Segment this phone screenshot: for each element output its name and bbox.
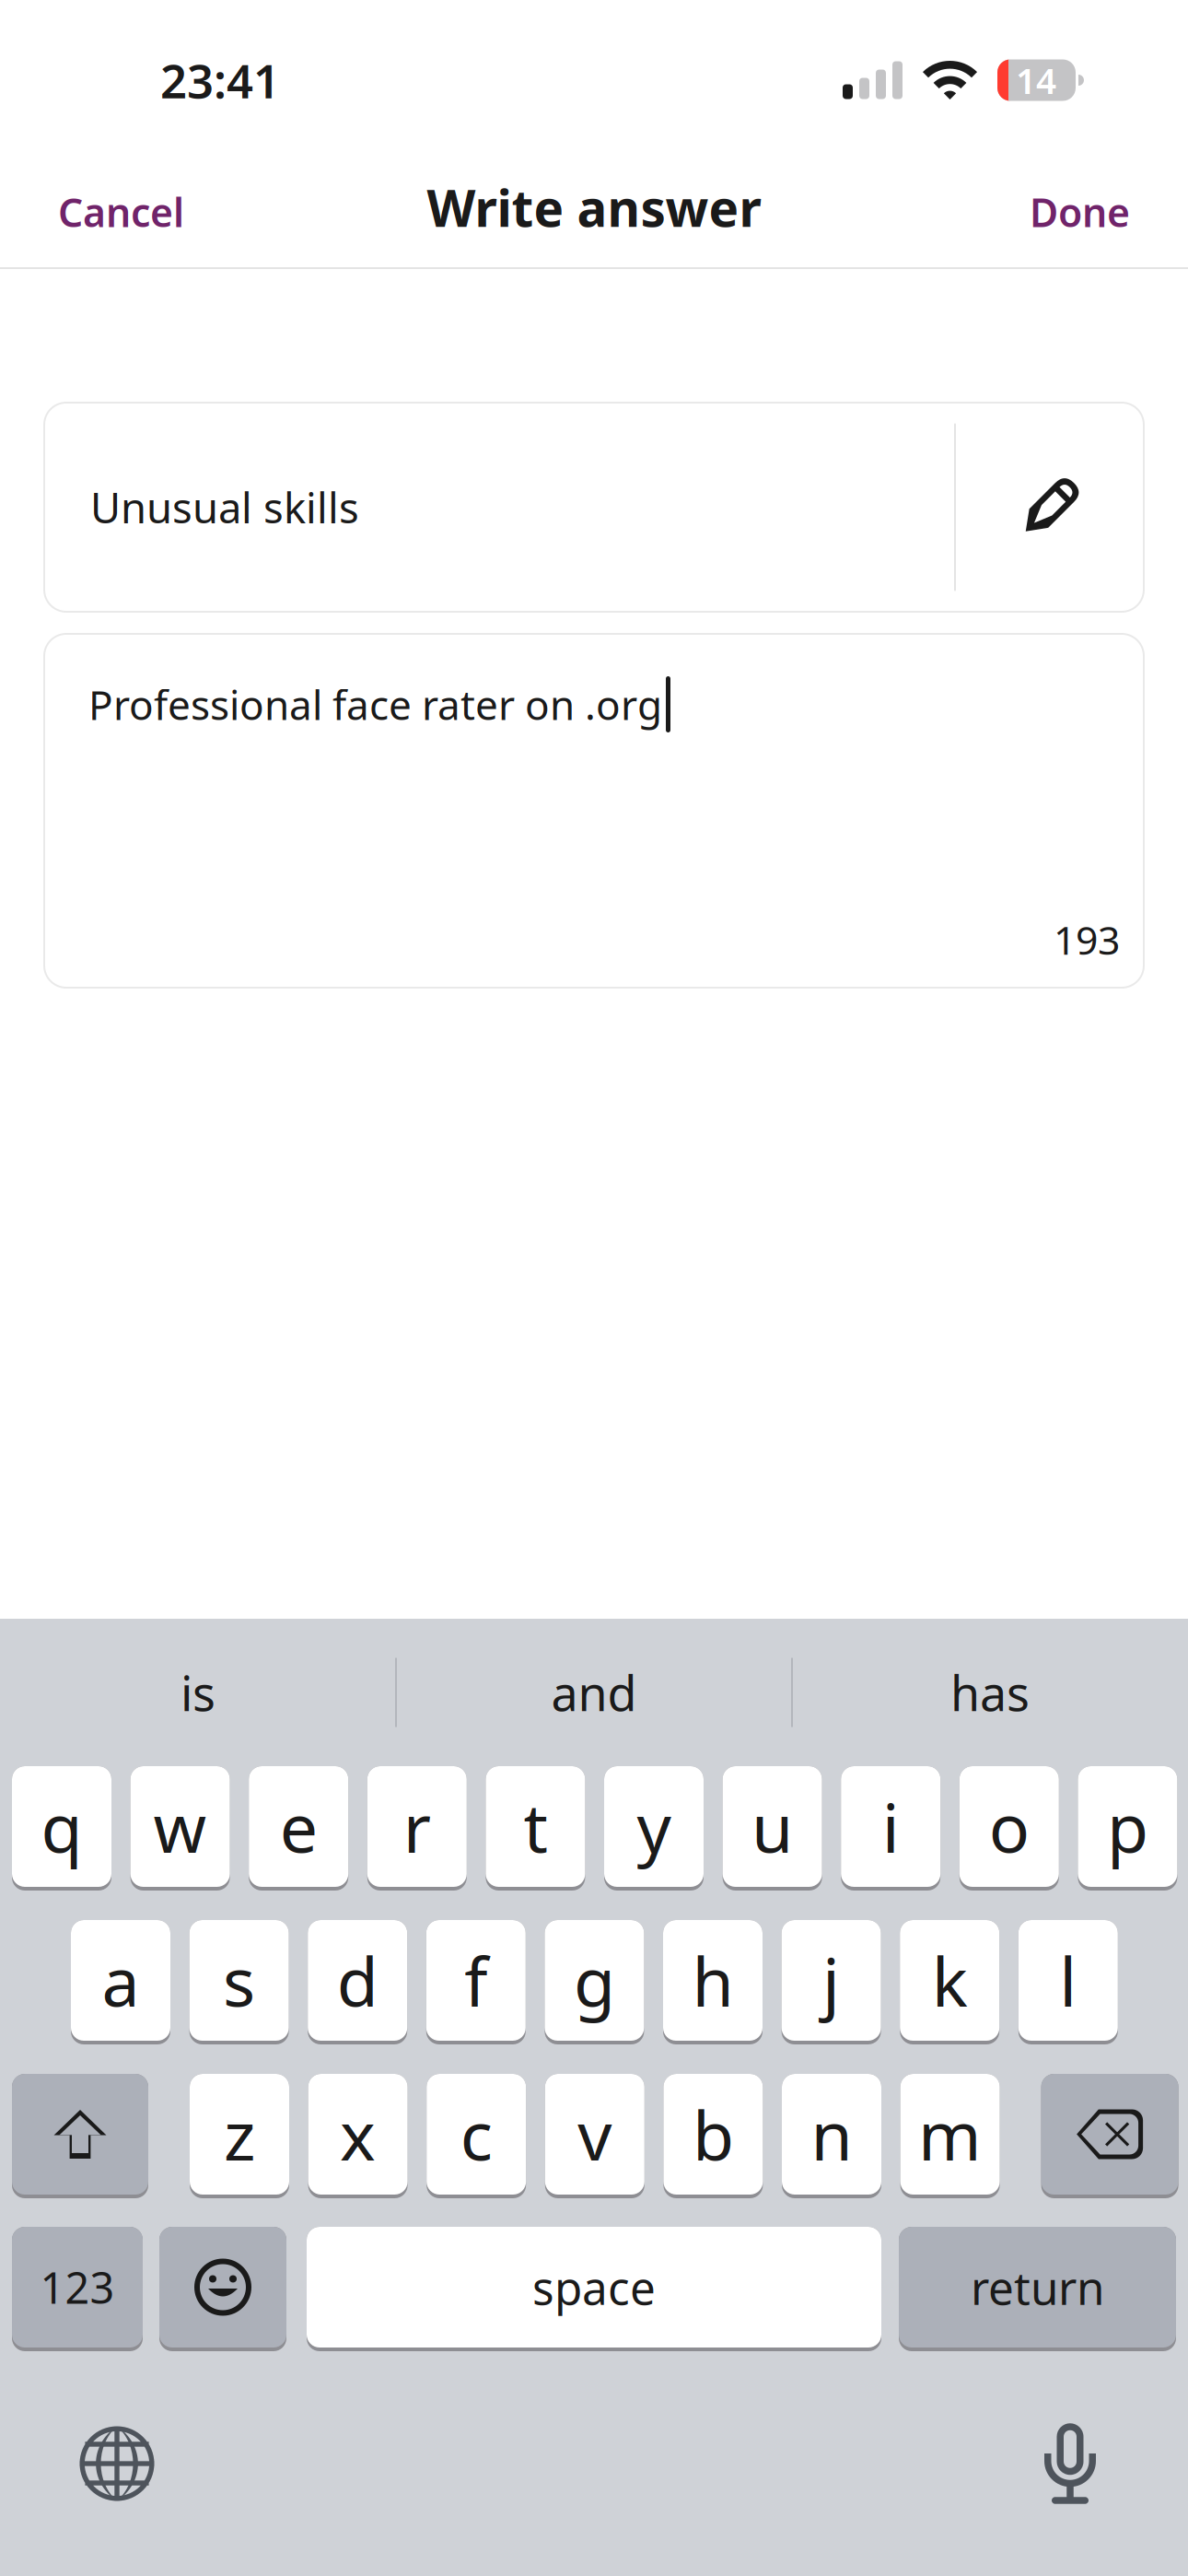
staticText: k [932, 1936, 968, 2025]
staticText: d [337, 1936, 378, 2025]
staticText: Unusual skills [90, 479, 359, 535]
button[interactable]: has [792, 1619, 1188, 1766]
button[interactable]: a [71, 1920, 170, 2044]
staticText: a [102, 1936, 140, 2025]
staticText: Cancel [58, 186, 184, 238]
button[interactable]: Emoji [159, 2227, 286, 2351]
button[interactable]: l [1018, 1920, 1118, 2044]
button[interactable]: o [959, 1766, 1059, 1891]
staticText: r [403, 1782, 431, 1871]
staticText: Professional face rater on .org [88, 677, 662, 731]
staticText: w [153, 1782, 207, 1871]
staticText: 193 [1054, 913, 1120, 966]
button[interactable]: s [189, 1920, 289, 2044]
button[interactable]: Change keyboard [65, 2412, 169, 2515]
button[interactable]: z [190, 2074, 289, 2198]
staticText: m [918, 2089, 982, 2179]
staticText: j [822, 1936, 840, 2025]
button[interactable]: q [12, 1766, 111, 1891]
button[interactable]: Shift [12, 2074, 148, 2198]
button[interactable]: Done [1007, 166, 1152, 258]
button[interactable]: and [396, 1619, 792, 1766]
staticText: Write answer [427, 174, 761, 241]
button[interactable]: y [604, 1766, 704, 1891]
staticText: c [460, 2089, 492, 2179]
staticText: t [523, 1782, 547, 1871]
staticText: q [41, 1782, 82, 1871]
staticText: y [637, 1782, 671, 1871]
staticText: has [950, 1661, 1030, 1724]
staticText: is [181, 1661, 215, 1724]
staticText: x [340, 2089, 376, 2179]
button[interactable]: g [545, 1920, 644, 2044]
button[interactable]: f [426, 1920, 526, 2044]
staticText: f [464, 1936, 487, 2025]
button[interactable]: n [782, 2074, 881, 2198]
staticText: b [692, 2089, 734, 2179]
staticText: i [882, 1782, 899, 1871]
button[interactable]: v [545, 2074, 644, 2198]
button[interactable]: w [130, 1766, 230, 1891]
button[interactable]: p [1078, 1766, 1177, 1891]
staticText: 14 [1016, 56, 1056, 104]
button[interactable]: is [0, 1619, 396, 1766]
button[interactable]: k [900, 1920, 999, 2044]
staticText: l [1059, 1936, 1077, 2025]
staticText: Done [1030, 186, 1130, 238]
button[interactable]: space [307, 2227, 881, 2351]
button[interactable]: x [308, 2074, 408, 2198]
button[interactable]: i [841, 1766, 940, 1891]
staticText: p [1107, 1782, 1148, 1871]
staticText: 123 [40, 2259, 115, 2316]
staticText: o [989, 1782, 1029, 1871]
staticText: n [811, 2089, 852, 2179]
button[interactable]: Edit [956, 403, 1144, 612]
button[interactable]: return [899, 2227, 1176, 2351]
button[interactable]: u [723, 1766, 822, 1891]
button[interactable]: h [663, 1920, 763, 2044]
staticText: and [551, 1661, 637, 1724]
button[interactable]: Cancel [36, 166, 206, 258]
staticText: z [224, 2089, 255, 2179]
button[interactable]: t [486, 1766, 585, 1891]
staticText: return [971, 2257, 1104, 2317]
staticText: 23:41 [160, 49, 280, 111]
button[interactable]: m [900, 2074, 1000, 2198]
button[interactable]: 123 [12, 2227, 143, 2351]
staticText: v [578, 2089, 612, 2179]
staticText: space [532, 2257, 656, 2317]
button[interactable]: e [249, 1766, 348, 1891]
button[interactable]: d [308, 1920, 407, 2044]
staticText: g [574, 1936, 615, 2025]
button[interactable]: j [782, 1920, 881, 2044]
staticText: u [752, 1782, 793, 1871]
staticText: s [223, 1936, 255, 2025]
button[interactable]: Delete [1041, 2074, 1178, 2198]
staticText: h [692, 1936, 734, 2025]
button[interactable]: b [663, 2074, 763, 2198]
button[interactable]: r [367, 1766, 467, 1891]
staticText: e [280, 1782, 317, 1871]
button[interactable]: c [427, 2074, 526, 2198]
button[interactable]: Dictation [1019, 2412, 1122, 2515]
